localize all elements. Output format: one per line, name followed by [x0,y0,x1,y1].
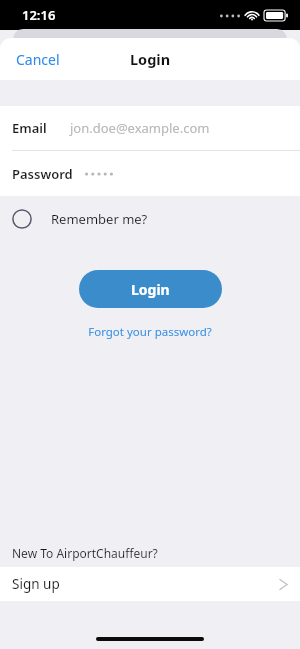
staticText: Login [131,280,170,299]
staticText: Login [130,49,171,69]
staticText: Forgot your password? [88,324,212,340]
button[interactable]: Email [0,106,300,150]
button[interactable]: Forgot your password? [76,320,224,344]
button[interactable]: Password [0,151,300,196]
staticText: New To AirportChauffeur? [12,545,158,561]
staticText: Sign up [12,575,60,593]
staticText: 12:16 [22,6,56,24]
staticText: Email [12,119,47,137]
button[interactable]: Remember me? [0,196,300,242]
button[interactable]: Login [79,270,222,308]
staticText: Cancel [16,50,60,69]
staticText: Remember me? [51,210,148,228]
button[interactable]: Cancel [0,42,76,77]
button[interactable]: Sign up [0,567,300,601]
staticText: jon.doe@example.com [70,119,210,137]
staticText: Password [12,165,73,183]
